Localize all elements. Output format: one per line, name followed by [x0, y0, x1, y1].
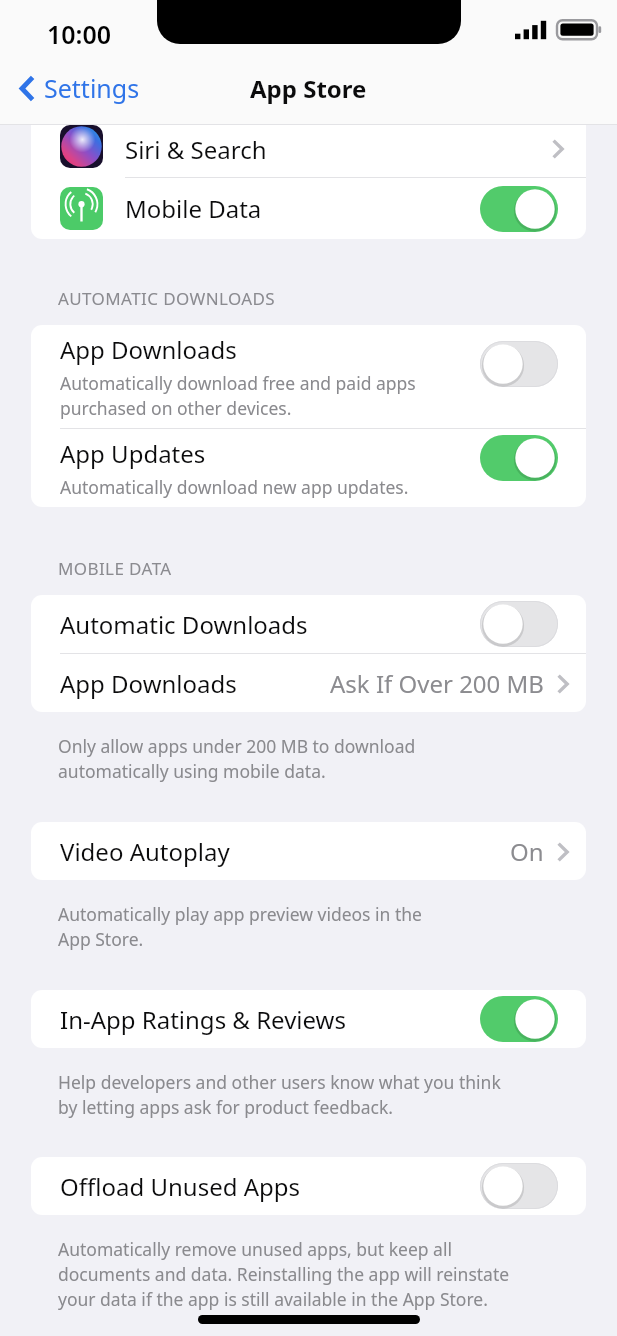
- staticText: Video Autoplay: [60, 835, 230, 868]
- button[interactable]: Off: [480, 601, 558, 647]
- button[interactable]: Off: [480, 1163, 558, 1209]
- staticText: Automatic Downloads: [60, 608, 308, 641]
- staticText: Automatically play app preview videos in…: [58, 902, 422, 951]
- button[interactable]: Offload Unused Apps: [31, 1157, 586, 1215]
- staticText: Settings: [44, 71, 140, 105]
- button[interactable]: Settings: [12, 65, 148, 111]
- staticText: App Downloads: [60, 667, 237, 700]
- button[interactable]: Automatic Downloads: [31, 595, 586, 653]
- staticText: Automatically download new app updates.: [60, 475, 409, 499]
- button[interactable]: On: [480, 186, 558, 232]
- button[interactable]: In-App Ratings & Reviews: [31, 990, 586, 1048]
- staticText: In-App Ratings & Reviews: [60, 1003, 346, 1036]
- button[interactable]: Mobile Data: [31, 178, 586, 239]
- staticText: AUTOMATIC DOWNLOADS: [58, 287, 276, 310]
- staticText: App Updates: [60, 437, 206, 470]
- staticText: Mobile Data: [125, 192, 262, 225]
- button[interactable]: On: [480, 435, 558, 481]
- staticText: MOBILE DATA: [58, 557, 172, 580]
- staticText: Siri & Search: [125, 133, 267, 166]
- staticText: Help developers and other users know wha…: [58, 1070, 501, 1119]
- staticText: Only allow apps under 200 MB to download…: [58, 734, 416, 783]
- button[interactable]: Video Autoplay: [31, 822, 586, 880]
- staticText: Automatically remove unused apps, but ke…: [58, 1237, 510, 1311]
- button[interactable]: Siri & Search: [31, 125, 586, 177]
- button[interactable]: On: [480, 996, 558, 1042]
- button[interactable]: App Downloads: [31, 325, 586, 428]
- staticText: App Downloads: [60, 333, 237, 366]
- staticText: Automatically download free and paid app…: [60, 371, 416, 420]
- button[interactable]: App Updates: [31, 429, 586, 507]
- button[interactable]: Off: [480, 341, 558, 387]
- staticText: Offload Unused Apps: [60, 1170, 301, 1203]
- staticText: 10:00: [47, 17, 112, 51]
- staticText: Ask If Over 200 MB: [330, 667, 544, 700]
- staticText: App Store: [250, 72, 367, 105]
- staticText: On: [510, 835, 544, 868]
- button[interactable]: App Downloads: [31, 654, 586, 712]
